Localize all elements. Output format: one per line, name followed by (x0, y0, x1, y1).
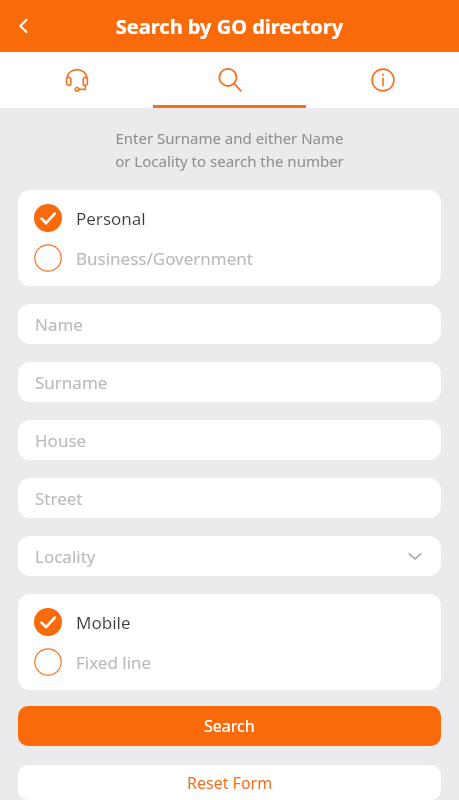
button[interactable]: Surname (18, 362, 441, 402)
button[interactable]: Search (18, 706, 441, 746)
staticText: Personal (76, 207, 146, 230)
staticText: Surname (35, 371, 424, 394)
staticText: Enter Surname and either Name (0, 128, 459, 148)
staticText: Street (35, 487, 424, 510)
button[interactable]: Search (153, 52, 306, 108)
button[interactable]: Business/Government (18, 238, 441, 278)
button[interactable]: Back (0, 2, 48, 50)
button[interactable]: House (18, 420, 441, 460)
button[interactable]: Reset Form (18, 765, 441, 800)
staticText: Search (204, 715, 255, 737)
button[interactable]: Street (18, 478, 441, 518)
button[interactable]: Name (18, 304, 441, 344)
staticText: or Locality to search the number (0, 151, 459, 171)
button[interactable]: Locality (18, 536, 441, 576)
staticText: Reset Form (187, 772, 273, 794)
staticText: Business/Government (76, 247, 253, 270)
staticText: Locality (35, 545, 406, 568)
staticText: Search by GO directory (0, 13, 459, 40)
button[interactable]: Information (306, 52, 459, 108)
button[interactable]: Mobile (18, 602, 441, 642)
button[interactable]: Support (0, 52, 153, 108)
staticText: House (35, 429, 424, 452)
button[interactable]: Personal (18, 198, 441, 238)
button[interactable]: Fixed line (18, 642, 441, 682)
staticText: Fixed line (76, 651, 152, 674)
staticText: Name (35, 313, 424, 336)
staticText: Mobile (76, 611, 131, 634)
